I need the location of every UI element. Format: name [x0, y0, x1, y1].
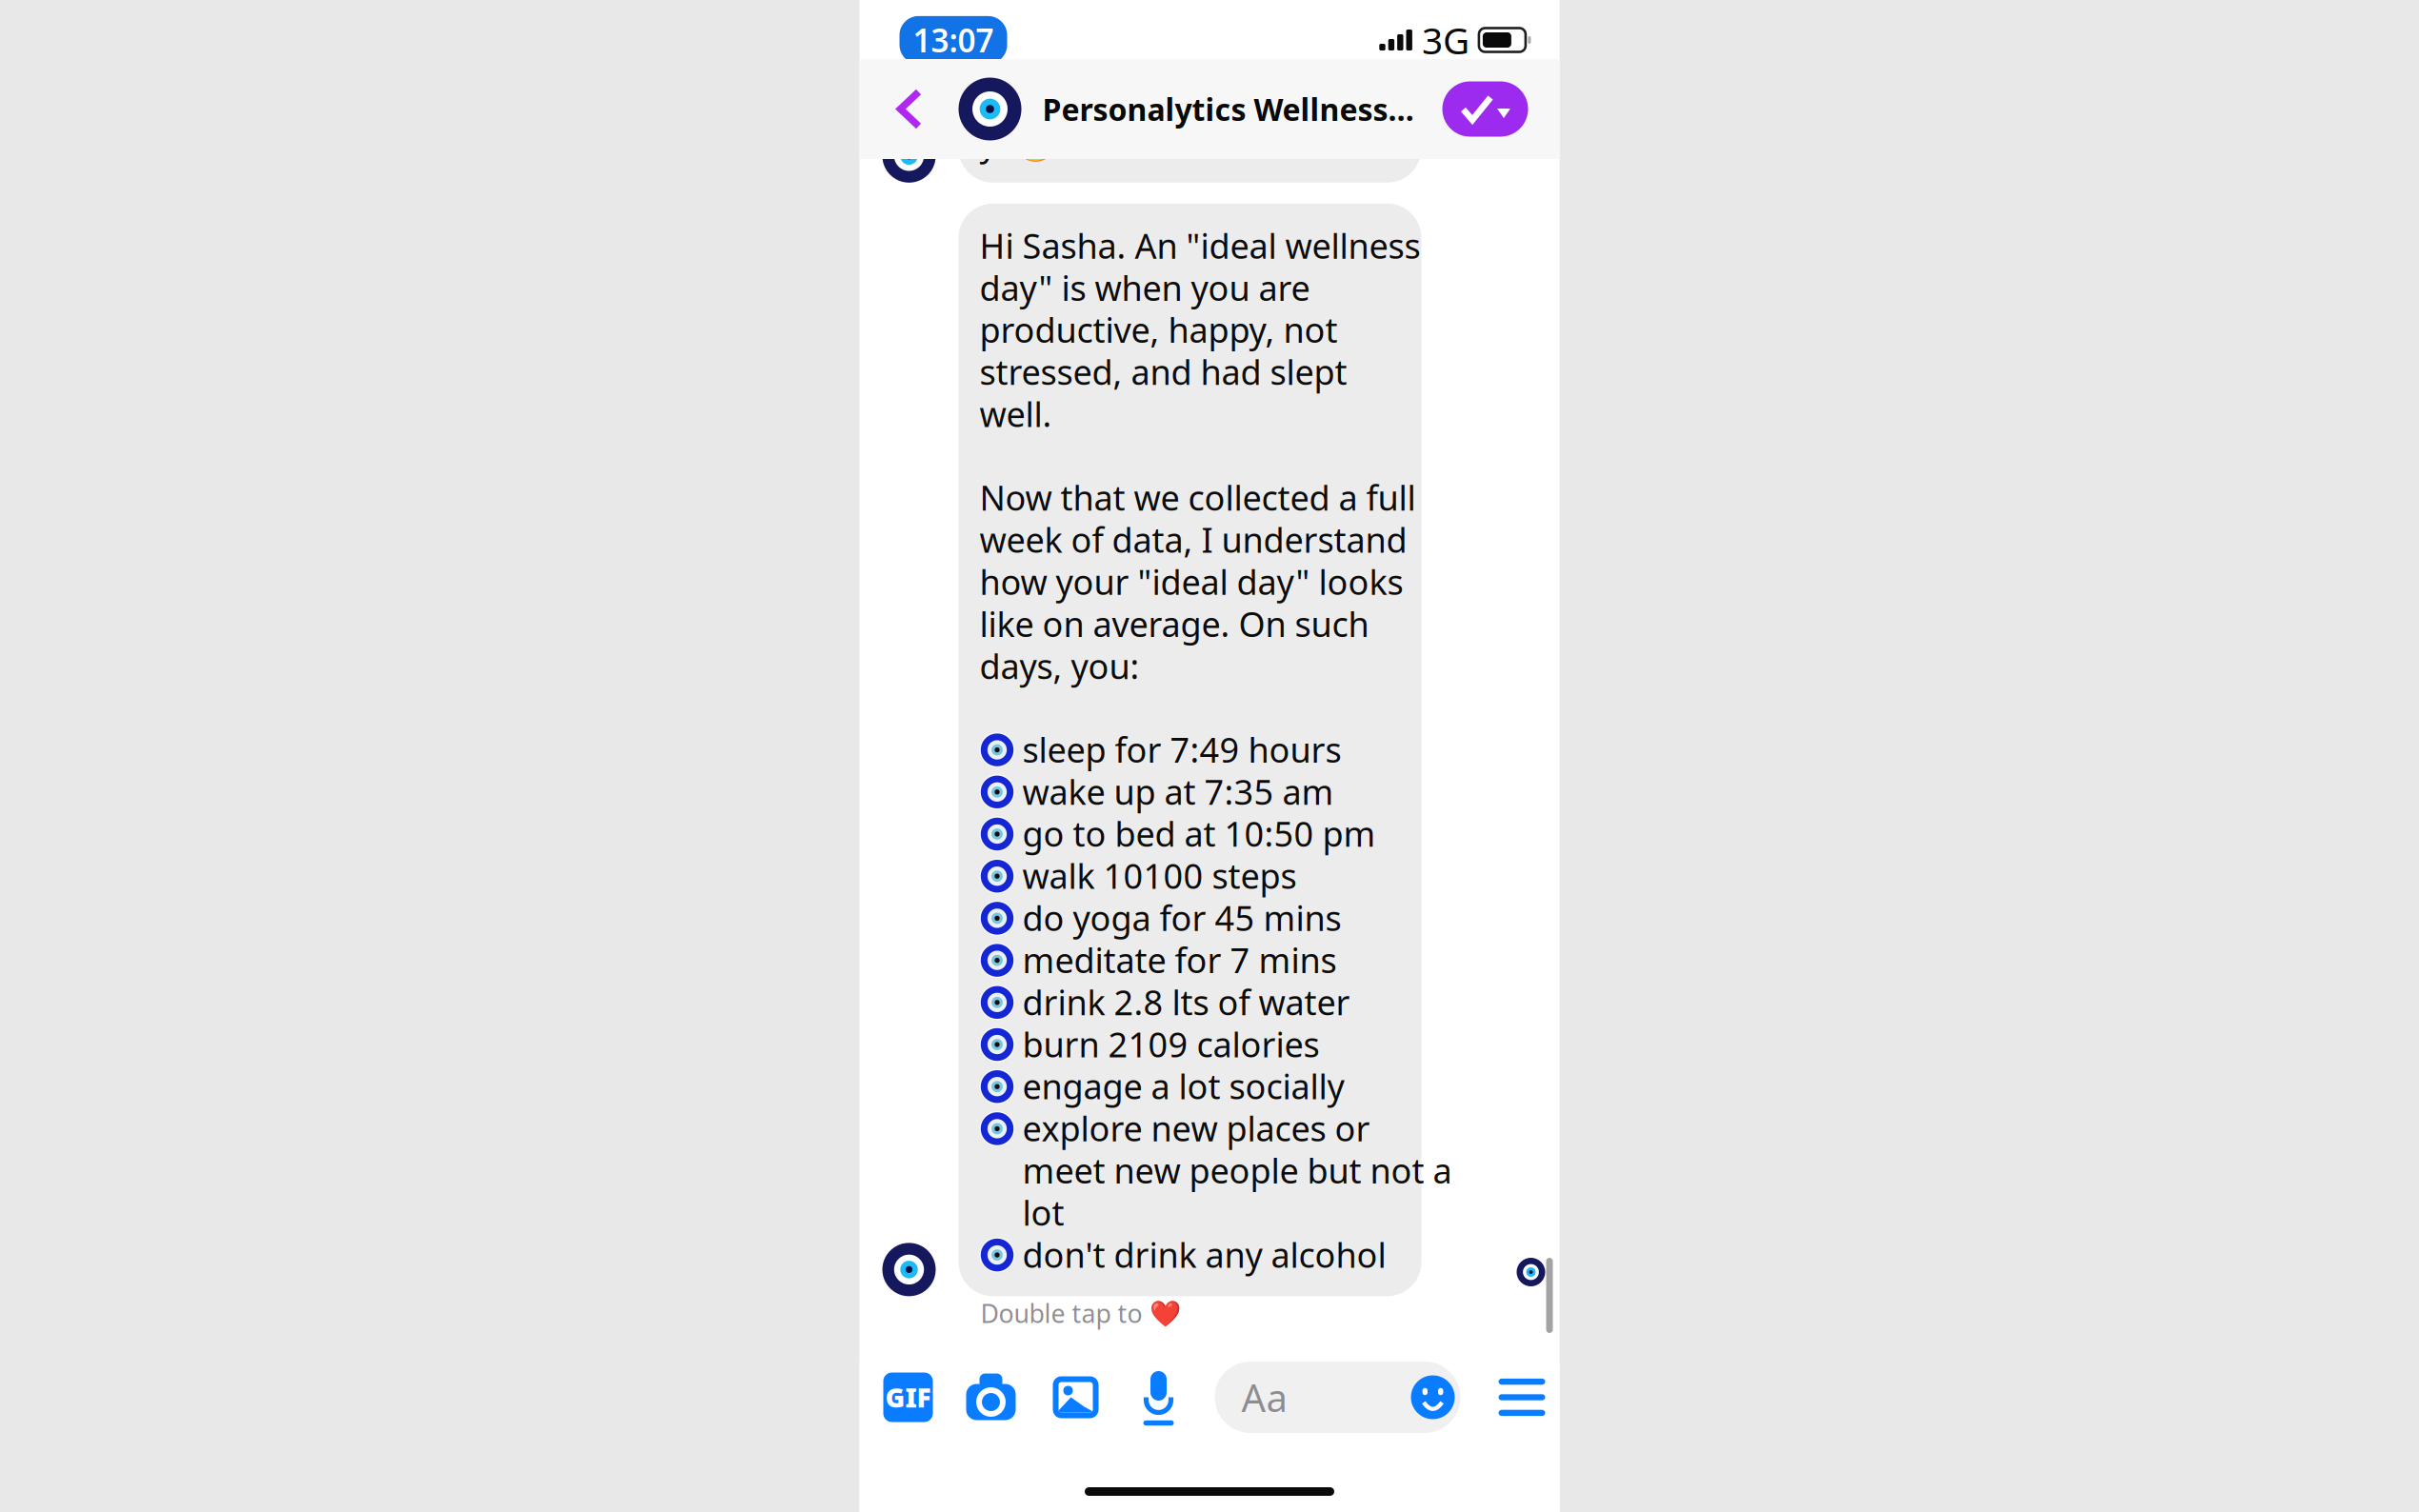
staticText: drink 2.8 lts of water	[1022, 979, 1350, 1025]
staticText: 13:07	[913, 19, 994, 61]
button[interactable]: Back	[872, 59, 959, 159]
button[interactable]: GIF	[883, 1362, 933, 1433]
staticText: walk 10100 steps	[1022, 853, 1297, 898]
staticText: do yoga for 45 mins	[1022, 895, 1341, 940]
staticText: engage a lot socially	[1022, 1063, 1344, 1109]
button[interactable]: Aa	[1215, 1362, 1460, 1433]
button[interactable]: Photos	[1053, 1362, 1099, 1433]
staticText: explore new places or meet new people bu…	[1022, 1105, 1452, 1235]
staticText: Double tap to ❤️	[980, 1296, 1180, 1330]
staticText: y 🙂	[980, 120, 1057, 165]
button[interactable]: Voice message	[1142, 1362, 1175, 1433]
staticText: don't drink any alcohol	[1022, 1232, 1386, 1277]
button[interactable]: Confirm	[1442, 81, 1528, 137]
staticText: sleep for 7:49 hours	[1022, 727, 1341, 772]
button[interactable]: More options	[1499, 1362, 1545, 1433]
staticText: Personalytics Wellness…	[1042, 89, 1414, 129]
button[interactable]: Camera	[966, 1362, 1016, 1433]
staticText: GIF	[885, 1380, 931, 1415]
staticText: go to bed at 10:50 pm	[1022, 811, 1376, 856]
staticText: wake up at 7:35 am	[1022, 769, 1334, 814]
staticText: burn 2109 calories	[1022, 1021, 1319, 1067]
staticText: Aa	[1241, 1372, 1287, 1422]
staticText: 3G	[1422, 16, 1469, 64]
staticText: Hi Sasha. An "ideal wellness day" is whe…	[980, 223, 1420, 436]
staticText: Now that we collected a full week of dat…	[980, 475, 1416, 688]
staticText: meditate for 7 mins	[1022, 937, 1337, 983]
button[interactable]: Personalytics Wellness…	[959, 59, 1442, 159]
